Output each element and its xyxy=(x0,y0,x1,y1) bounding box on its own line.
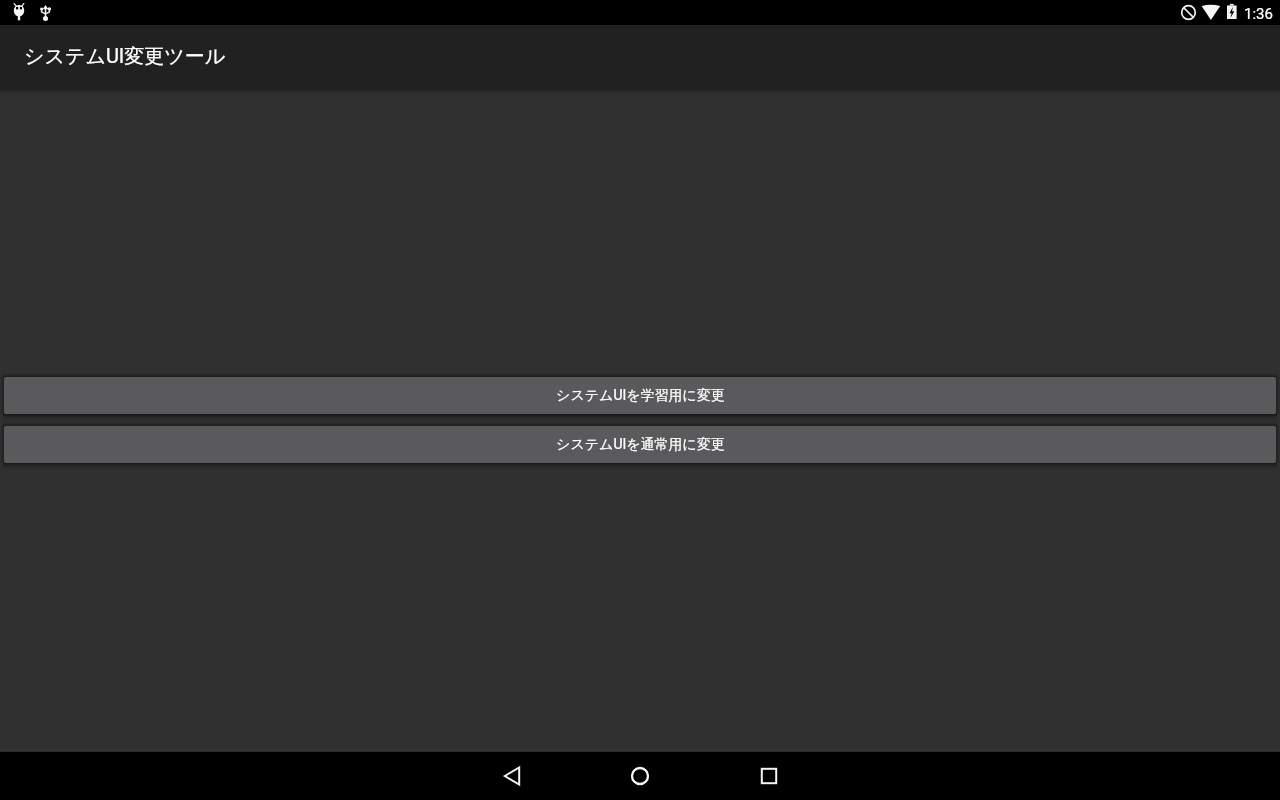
staticText: システムUIを通常用に変更 xyxy=(556,436,725,454)
button[interactable]: Back xyxy=(488,752,536,800)
staticText: システムUIを学習用に変更 xyxy=(556,387,725,405)
button[interactable]: Recents xyxy=(745,752,793,800)
button[interactable]: システムUIを学習用に変更 xyxy=(4,377,1276,414)
button[interactable]: Home xyxy=(616,752,664,800)
button[interactable]: システムUIを通常用に変更 xyxy=(4,426,1276,463)
staticText: システムUI変更ツール xyxy=(24,44,226,69)
staticText: 1:36 xyxy=(1244,5,1273,23)
